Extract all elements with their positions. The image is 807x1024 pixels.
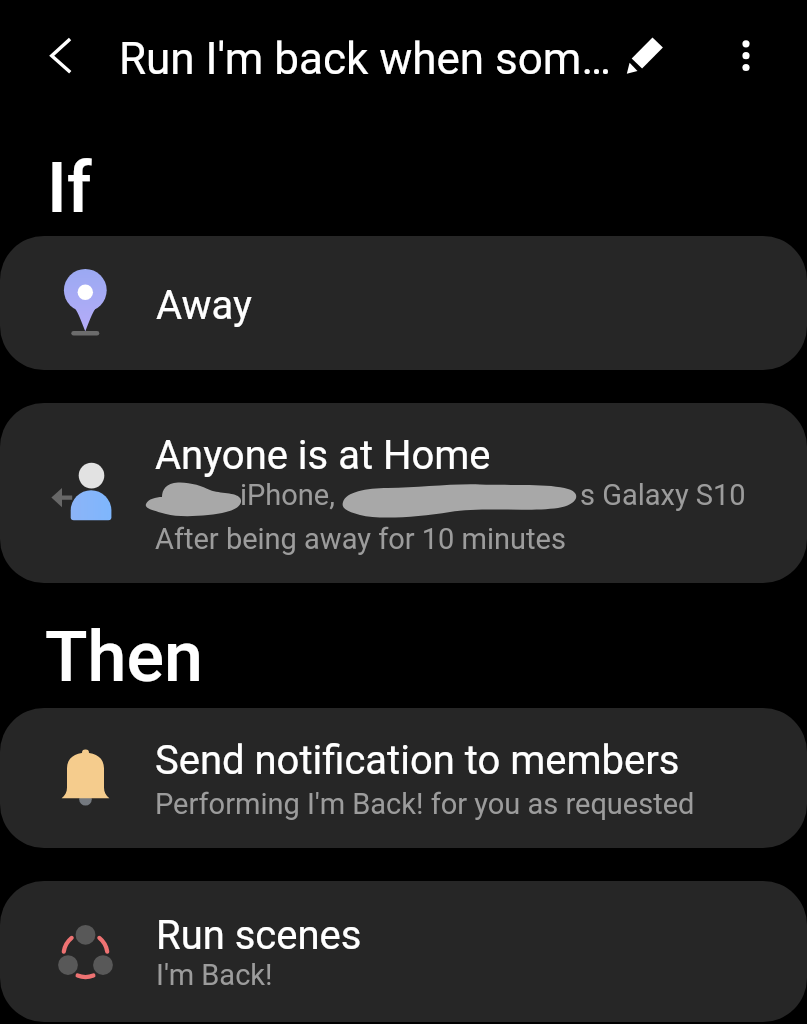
button[interactable]: Away <box>0 236 807 370</box>
button[interactable]: Edit <box>616 26 676 86</box>
button[interactable]: Navigate up <box>36 26 96 86</box>
staticText: Then <box>45 616 203 698</box>
staticText: iPhone, <box>240 478 335 512</box>
button[interactable]: Run scenes <box>0 881 807 1022</box>
staticText: Performing I'm Back! for you as requeste… <box>155 787 695 821</box>
button[interactable]: Send notification to members <box>0 708 807 848</box>
staticText: Anyone is at Home <box>155 432 491 479</box>
staticText: s Galaxy S10 <box>580 478 746 512</box>
button[interactable]: Anyone is at Home <box>0 403 807 583</box>
staticText: Away <box>156 282 252 329</box>
staticText: Send notification to members <box>155 737 680 784</box>
staticText: After being away for 10 minutes <box>155 522 566 556</box>
button[interactable]: More options <box>715 25 776 86</box>
staticText: I'm Back! <box>156 958 273 992</box>
staticText: If <box>47 147 92 229</box>
staticText: Run scenes <box>156 912 362 959</box>
staticText: Run I'm back when som… <box>119 33 611 85</box>
